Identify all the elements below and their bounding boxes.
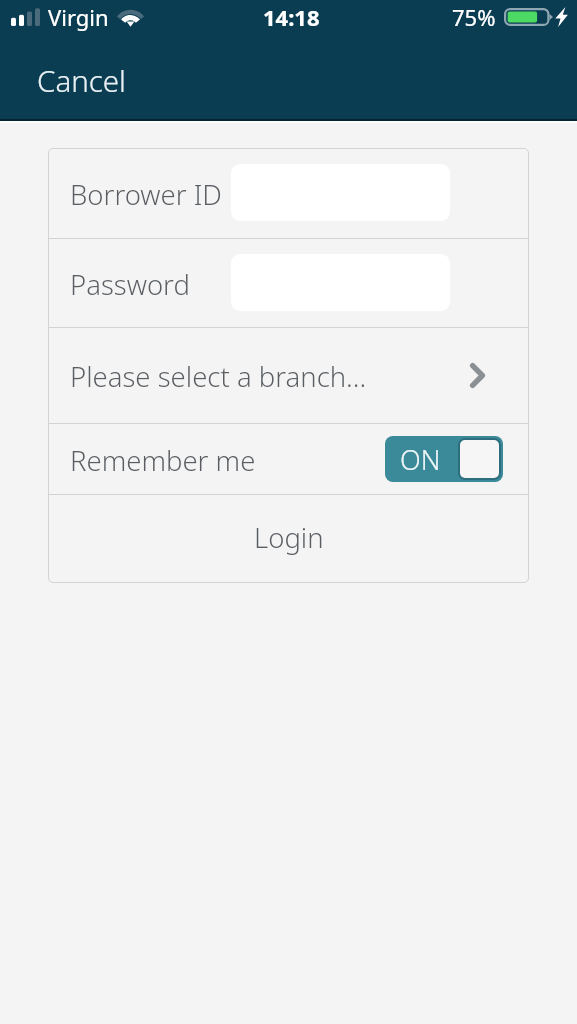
staticText: Login: [254, 519, 324, 556]
button[interactable]: Login: [48, 495, 529, 583]
other: Select a branch: [470, 363, 485, 388]
button[interactable]: Borrower ID: [48, 148, 529, 238]
staticText: ON: [400, 441, 441, 478]
staticText: 14:18: [263, 2, 320, 32]
button[interactable]: Password: [48, 239, 529, 327]
staticText: Password: [70, 266, 190, 303]
staticText: Remember me: [70, 442, 256, 479]
staticText: Please select a branch...: [70, 358, 367, 395]
button[interactable]: Cancel: [0, 44, 163, 116]
staticText: Cancel: [37, 60, 126, 100]
staticText: 75%: [452, 2, 496, 32]
staticText: Borrower ID: [70, 176, 222, 213]
button[interactable]: Remember me: [48, 424, 529, 494]
staticText: Virgin: [48, 2, 109, 32]
button[interactable]: Remember me, on: [385, 436, 503, 482]
button[interactable]: Please select a branch...: [48, 328, 529, 423]
